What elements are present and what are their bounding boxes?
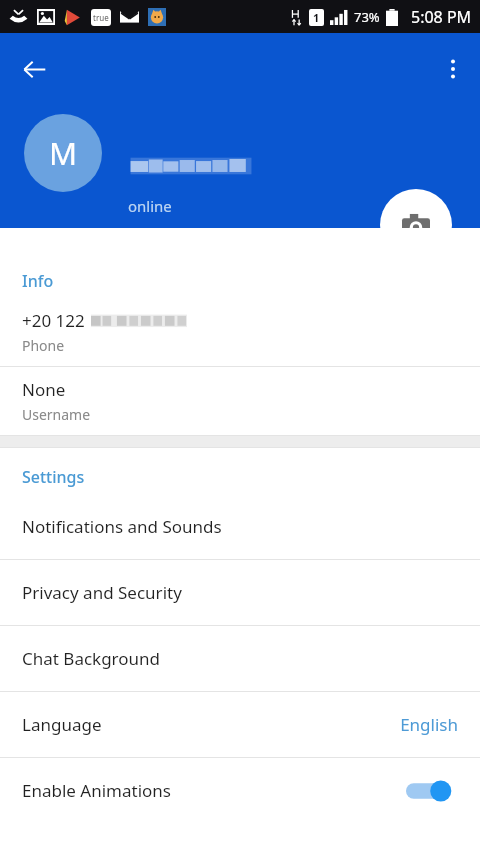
staticText: Language [22, 713, 102, 736]
staticText: Phone [22, 336, 65, 355]
staticText: Privacy and Security [22, 581, 182, 604]
button[interactable]: Language [0, 692, 480, 757]
button[interactable]: Privacy and Security [0, 560, 480, 625]
button[interactable]: More options [429, 45, 477, 93]
button[interactable]: Notifications and Sounds [0, 494, 480, 559]
staticText: None [22, 378, 66, 401]
staticText: Chat Background [22, 647, 161, 670]
button[interactable]: M [24, 114, 102, 192]
staticText: Notifications and Sounds [22, 515, 222, 538]
button[interactable]: Chat Background [0, 626, 480, 691]
staticText: Username [22, 405, 91, 424]
staticText: Info [22, 270, 54, 292]
staticText: +20 122 [22, 309, 85, 332]
button[interactable]: +20 122 [0, 298, 480, 366]
button[interactable]: Change photo [380, 189, 452, 261]
staticText: 1 [313, 10, 320, 25]
staticText: Settings [22, 466, 85, 488]
button[interactable]: Back [10, 45, 58, 93]
staticText: online [128, 196, 172, 216]
staticText: 73% [354, 8, 380, 26]
staticText: 5:08 PM [411, 6, 472, 28]
button[interactable]: Enable Animations [0, 758, 480, 823]
button[interactable]: None [0, 367, 480, 435]
staticText: Enable Animations [22, 779, 171, 802]
staticText: English [400, 713, 458, 736]
staticText: true [93, 12, 109, 23]
button[interactable]: Enable Animations toggle [406, 775, 458, 807]
staticText: M [49, 132, 78, 174]
